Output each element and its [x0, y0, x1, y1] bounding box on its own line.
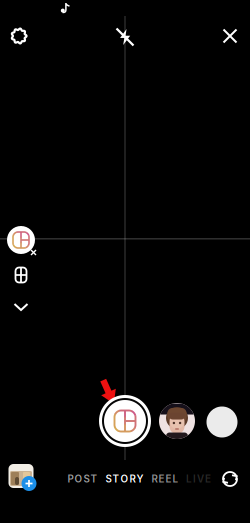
button[interactable]: Layout: [6, 260, 36, 290]
button[interactable]: More effects: [205, 405, 239, 439]
button[interactable]: R E E L: [148, 467, 181, 491]
staticText: R E E L: [151, 473, 178, 485]
button[interactable]: Flip camera: [215, 464, 245, 494]
button[interactable]: Flash off: [108, 20, 142, 54]
button[interactable]: Remove layout: [6, 225, 36, 255]
button[interactable]: Face effect: [159, 403, 195, 439]
button[interactable]: Gallery: [8, 464, 39, 493]
staticText: L I V E: [186, 473, 211, 485]
staticText: P O S T: [67, 473, 97, 485]
button[interactable]: Close: [213, 19, 247, 53]
staticText: S T O R Y: [105, 473, 143, 485]
button[interactable]: Camera settings: [2, 19, 36, 53]
button[interactable]: Capture: [99, 395, 151, 447]
button[interactable]: More: [6, 292, 36, 322]
button[interactable]: P O S T: [64, 467, 100, 491]
button[interactable]: S T O R Y: [102, 467, 146, 491]
button[interactable]: L I V E: [183, 467, 214, 491]
